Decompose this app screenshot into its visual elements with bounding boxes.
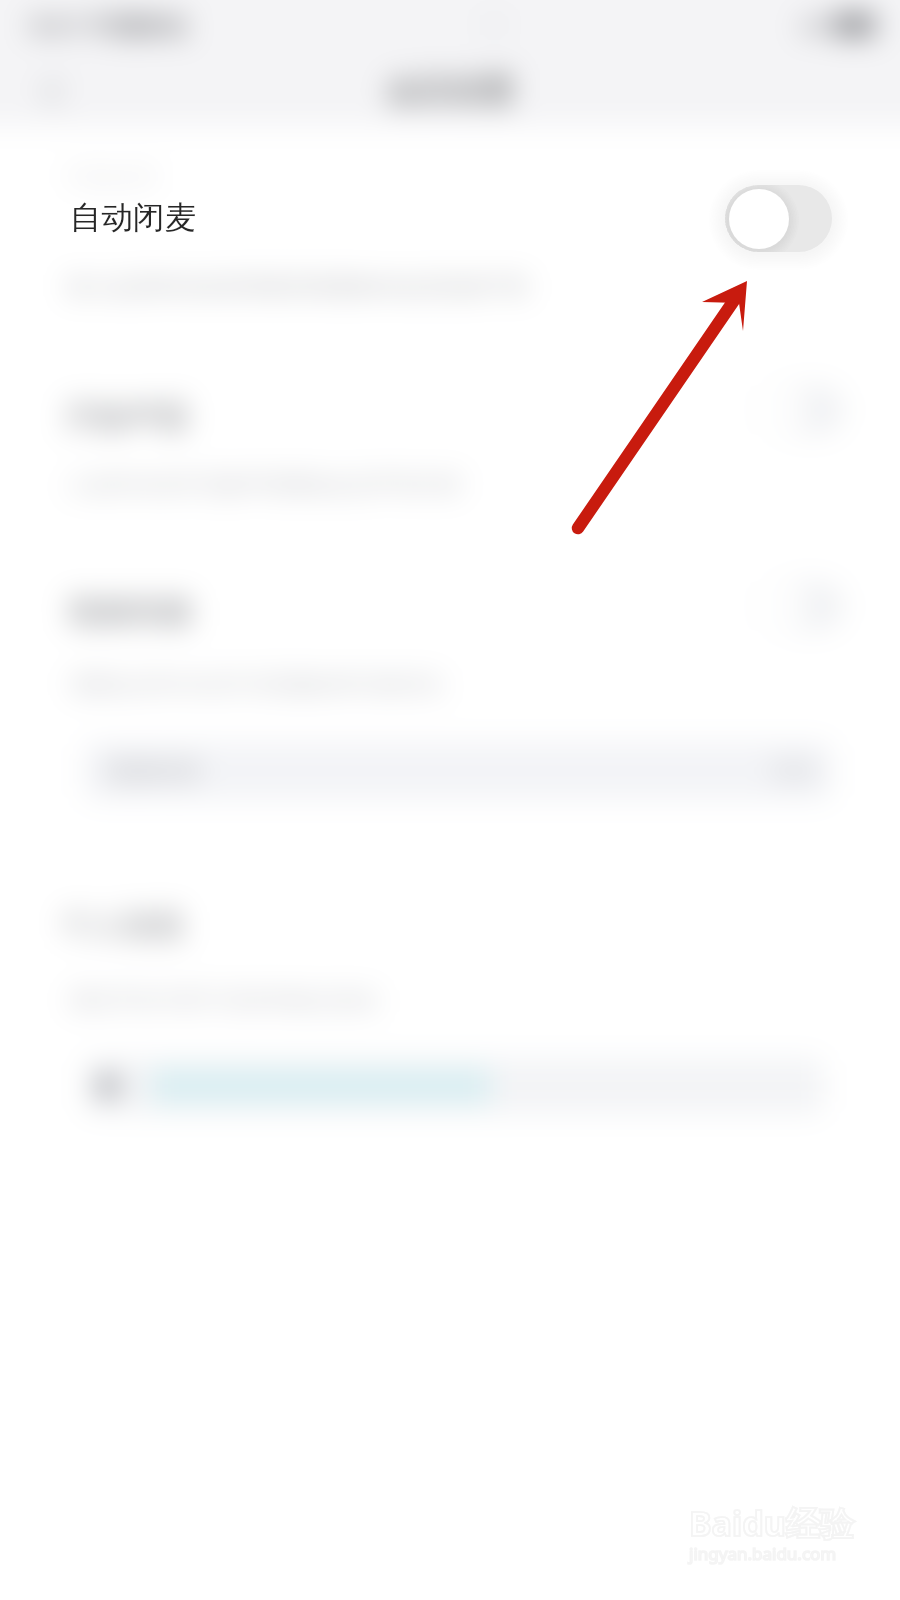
button[interactable]: 视频画质 bbox=[84, 742, 832, 800]
button[interactable]: Speaker toggle, off bbox=[758, 385, 844, 435]
staticText: 9:41 中国移动 bbox=[30, 8, 187, 42]
button[interactable]: Beauty filter toggle, off bbox=[758, 581, 844, 631]
staticText: 自动闭麦 bbox=[70, 198, 196, 238]
button[interactable]: Auto mute microphone toggle, off bbox=[716, 177, 841, 260]
button[interactable] bbox=[84, 1058, 824, 1114]
button[interactable]: Back bbox=[14, 53, 92, 131]
staticText: 个人信息 bbox=[60, 906, 184, 945]
staticText: 开扬声器 bbox=[64, 398, 188, 437]
staticText: 视频美颜 bbox=[67, 593, 191, 632]
staticText: jingyan.baidu.com bbox=[689, 1542, 837, 1565]
staticText: 会议设置 bbox=[386, 71, 514, 111]
staticText: Baidu经验 bbox=[689, 1500, 854, 1546]
staticText: 65 bbox=[801, 10, 827, 40]
button[interactable]: 自动闭麦 bbox=[0, 152, 900, 284]
